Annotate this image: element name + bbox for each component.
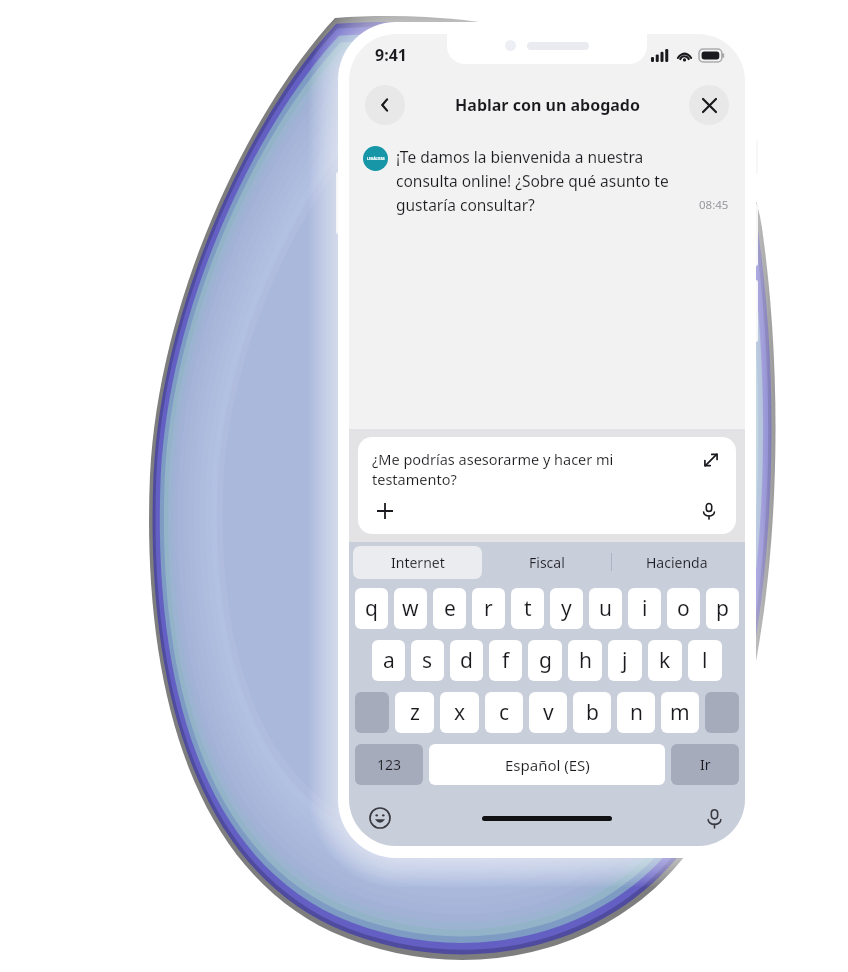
staticText: 9:41 [375, 44, 407, 66]
button[interactable]: i [628, 588, 661, 629]
staticText: x [454, 698, 466, 727]
button[interactable]: Emoji [365, 803, 395, 833]
button[interactable]: n [617, 692, 655, 733]
staticText: Español (ES) [505, 755, 590, 775]
staticText: k [659, 646, 671, 675]
button[interactable]: q [355, 588, 388, 629]
staticText: ¿Me podrías asesorarme y hacer mi testam… [372, 449, 692, 490]
button[interactable]: z [395, 692, 434, 733]
button[interactable]: m [661, 692, 699, 733]
staticText: b [586, 698, 599, 727]
button[interactable]: c [485, 692, 523, 733]
staticText: s [422, 646, 433, 675]
button[interactable]: Internet [353, 546, 482, 579]
button[interactable]: Cerrar [689, 85, 729, 125]
button[interactable]: y [550, 588, 583, 629]
button[interactable]: Fiscal [482, 542, 611, 582]
staticText: LEGÁLITAS [367, 156, 385, 161]
staticText: e [444, 594, 456, 623]
staticText: c [499, 698, 510, 727]
button[interactable]: h [568, 640, 602, 681]
staticText: Internet [391, 553, 445, 572]
button[interactable]: r [472, 588, 505, 629]
staticText: n [630, 698, 643, 727]
button[interactable]: j [608, 640, 642, 681]
button[interactable]: g [528, 640, 562, 681]
button[interactable]: Hacienda [612, 542, 741, 582]
button[interactable]: x [440, 692, 479, 733]
staticText: w [402, 594, 419, 623]
staticText: Hacienda [646, 553, 708, 572]
staticText: y [561, 594, 572, 623]
staticText: j [622, 646, 628, 675]
staticText: a [383, 646, 395, 675]
staticText: u [599, 594, 612, 623]
staticText: 08:45 [699, 197, 729, 213]
button[interactable]: p [706, 588, 739, 629]
button[interactable]: k [648, 640, 682, 681]
button[interactable]: t [511, 588, 544, 629]
button[interactable]: w [394, 588, 427, 629]
button[interactable]: 123 [355, 744, 423, 785]
button[interactable]: e [433, 588, 466, 629]
button[interactable]: Ampliar [700, 449, 722, 471]
staticText: h [579, 646, 592, 675]
staticText: g [539, 646, 552, 675]
staticText: d [460, 646, 473, 675]
staticText: t [524, 594, 532, 623]
button[interactable]: Dictar [696, 498, 722, 524]
staticText: o [677, 594, 690, 623]
staticText: r [484, 594, 493, 623]
staticText: i [642, 594, 648, 623]
button[interactable]: a [372, 640, 405, 681]
staticText: l [702, 646, 708, 675]
button[interactable]: Voz [699, 803, 729, 833]
staticText: 123 [377, 755, 402, 774]
button[interactable]: Ir [671, 744, 739, 785]
staticText: z [410, 698, 420, 727]
staticText: Hablar con un abogado [455, 94, 640, 116]
staticText: v [543, 698, 554, 727]
button[interactable]: Español (ES) [429, 744, 665, 785]
button[interactable]: v [529, 692, 567, 733]
staticText: q [365, 594, 378, 623]
button[interactable]: b [573, 692, 611, 733]
button[interactable]: u [589, 588, 622, 629]
staticText: p [716, 594, 729, 623]
button[interactable]: Mayúsculas [355, 692, 389, 733]
button[interactable]: Adjuntar [372, 498, 398, 524]
staticText: Ir [700, 755, 711, 774]
button[interactable]: Atrás [365, 85, 405, 125]
staticText: ¡Te damos la bienvenida a nuestra consul… [396, 146, 693, 215]
button[interactable]: f [489, 640, 522, 681]
staticText: Fiscal [529, 553, 565, 572]
button[interactable]: s [411, 640, 444, 681]
button[interactable]: o [667, 588, 700, 629]
staticText: m [670, 698, 690, 727]
button[interactable]: l [688, 640, 722, 681]
button[interactable]: d [450, 640, 483, 681]
staticText: f [502, 646, 510, 675]
button[interactable]: Borrar [705, 692, 739, 733]
